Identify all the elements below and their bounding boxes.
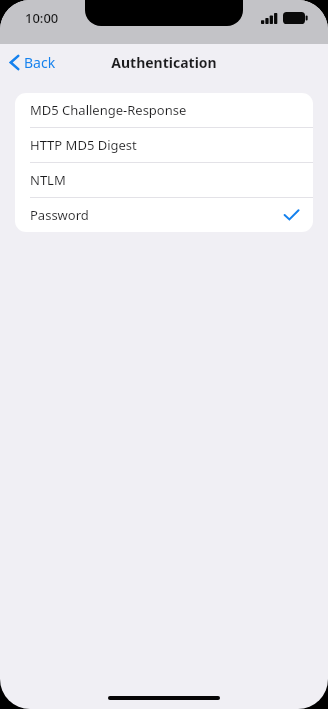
other: Selected [284,209,299,221]
staticText: HTTP MD5 Digest [30,136,137,154]
staticText: MD5 Challenge-Response [30,101,187,119]
staticText: 10:00 [25,9,59,27]
staticText: NTLM [30,171,66,189]
button[interactable]: Back [0,49,66,76]
staticText: Authentication [111,53,217,72]
button[interactable]: NTLM [15,163,313,197]
button[interactable]: HTTP MD5 Digest [15,128,313,162]
button[interactable]: MD5 Challenge-Response [15,93,313,127]
button[interactable]: Password [15,198,313,232]
staticText: Back [24,53,56,72]
staticText: Password [30,206,89,224]
